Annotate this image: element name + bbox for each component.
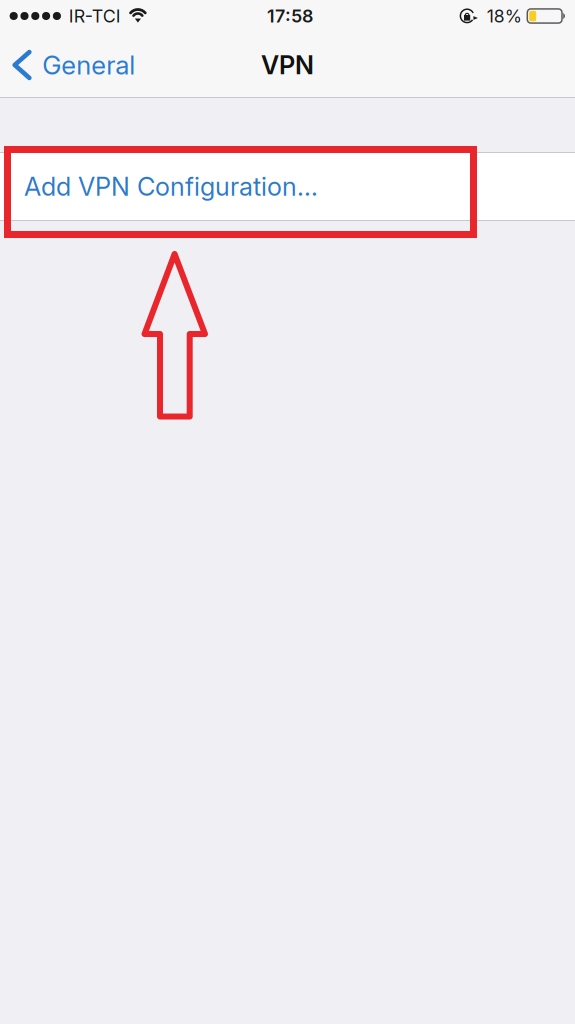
button[interactable]: Add VPN Configuration... — [0, 153, 575, 220]
staticText: Add VPN Configuration... — [24, 171, 318, 202]
staticText: 17:58 — [267, 5, 313, 27]
staticText: General — [42, 49, 135, 81]
button[interactable]: Back to General — [0, 32, 147, 98]
staticText: 18% — [487, 5, 522, 27]
staticText: IR-TCI — [69, 5, 121, 27]
staticText: VPN — [261, 50, 314, 80]
